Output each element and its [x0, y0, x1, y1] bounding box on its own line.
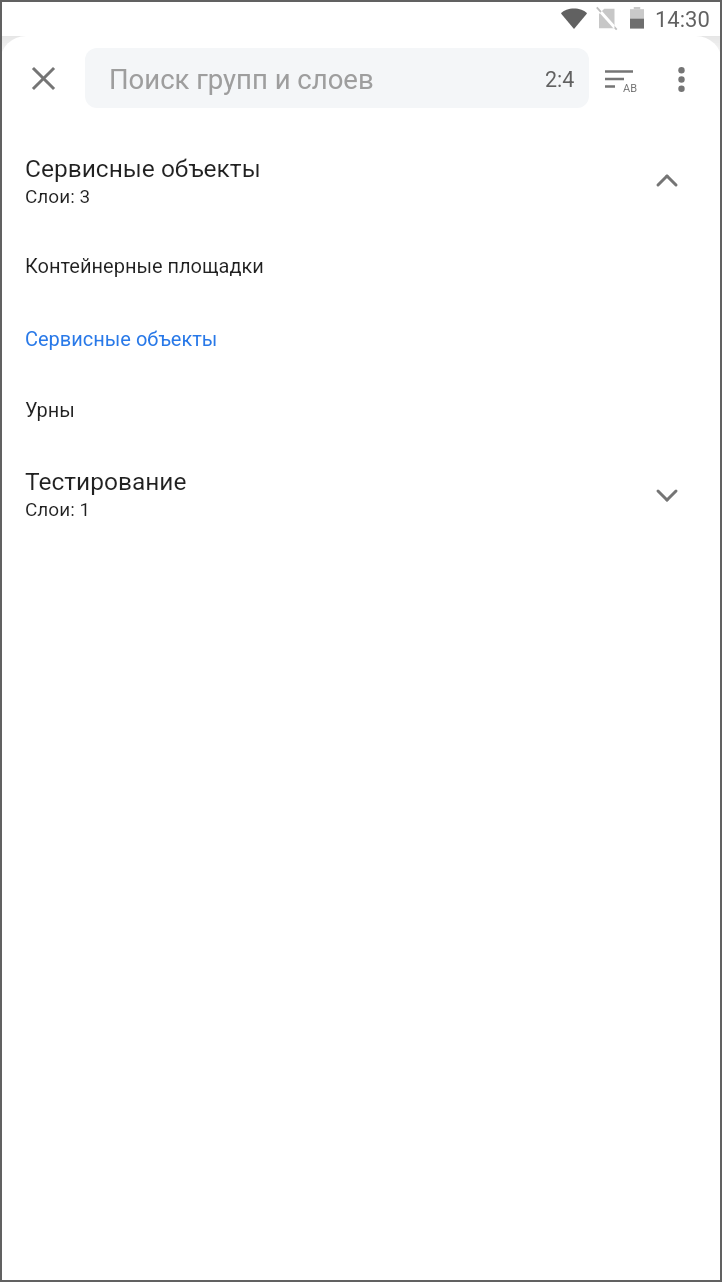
button[interactable]: Сервисные объекты — [0, 148, 722, 220]
button[interactable]: Сортировка — [596, 55, 642, 101]
staticText: Слои: 3 — [25, 185, 91, 207]
staticText: Сервисные объекты — [25, 327, 218, 350]
button[interactable]: Тестирование — [0, 461, 722, 533]
button[interactable]: Закрыть — [19, 54, 67, 102]
staticText: Слои: 1 — [25, 498, 91, 520]
staticText: 2:4 — [545, 67, 575, 92]
staticText: Контейнерные площадки — [25, 254, 264, 277]
staticText: Сервисные объекты — [25, 154, 261, 183]
button[interactable]: Урны — [0, 385, 722, 433]
button[interactable]: Контейнерные площадки — [0, 241, 722, 289]
button[interactable]: Поиск групп и слоев — [85, 48, 589, 108]
button[interactable]: Ещё — [659, 57, 703, 101]
staticText: AB — [623, 82, 638, 95]
staticText: Поиск групп и слоев — [109, 63, 545, 95]
button[interactable]: Сервисные объекты — [0, 314, 722, 362]
staticText: 14:30 — [655, 7, 710, 33]
staticText: Урны — [25, 398, 75, 421]
staticText: Тестирование — [25, 467, 187, 496]
